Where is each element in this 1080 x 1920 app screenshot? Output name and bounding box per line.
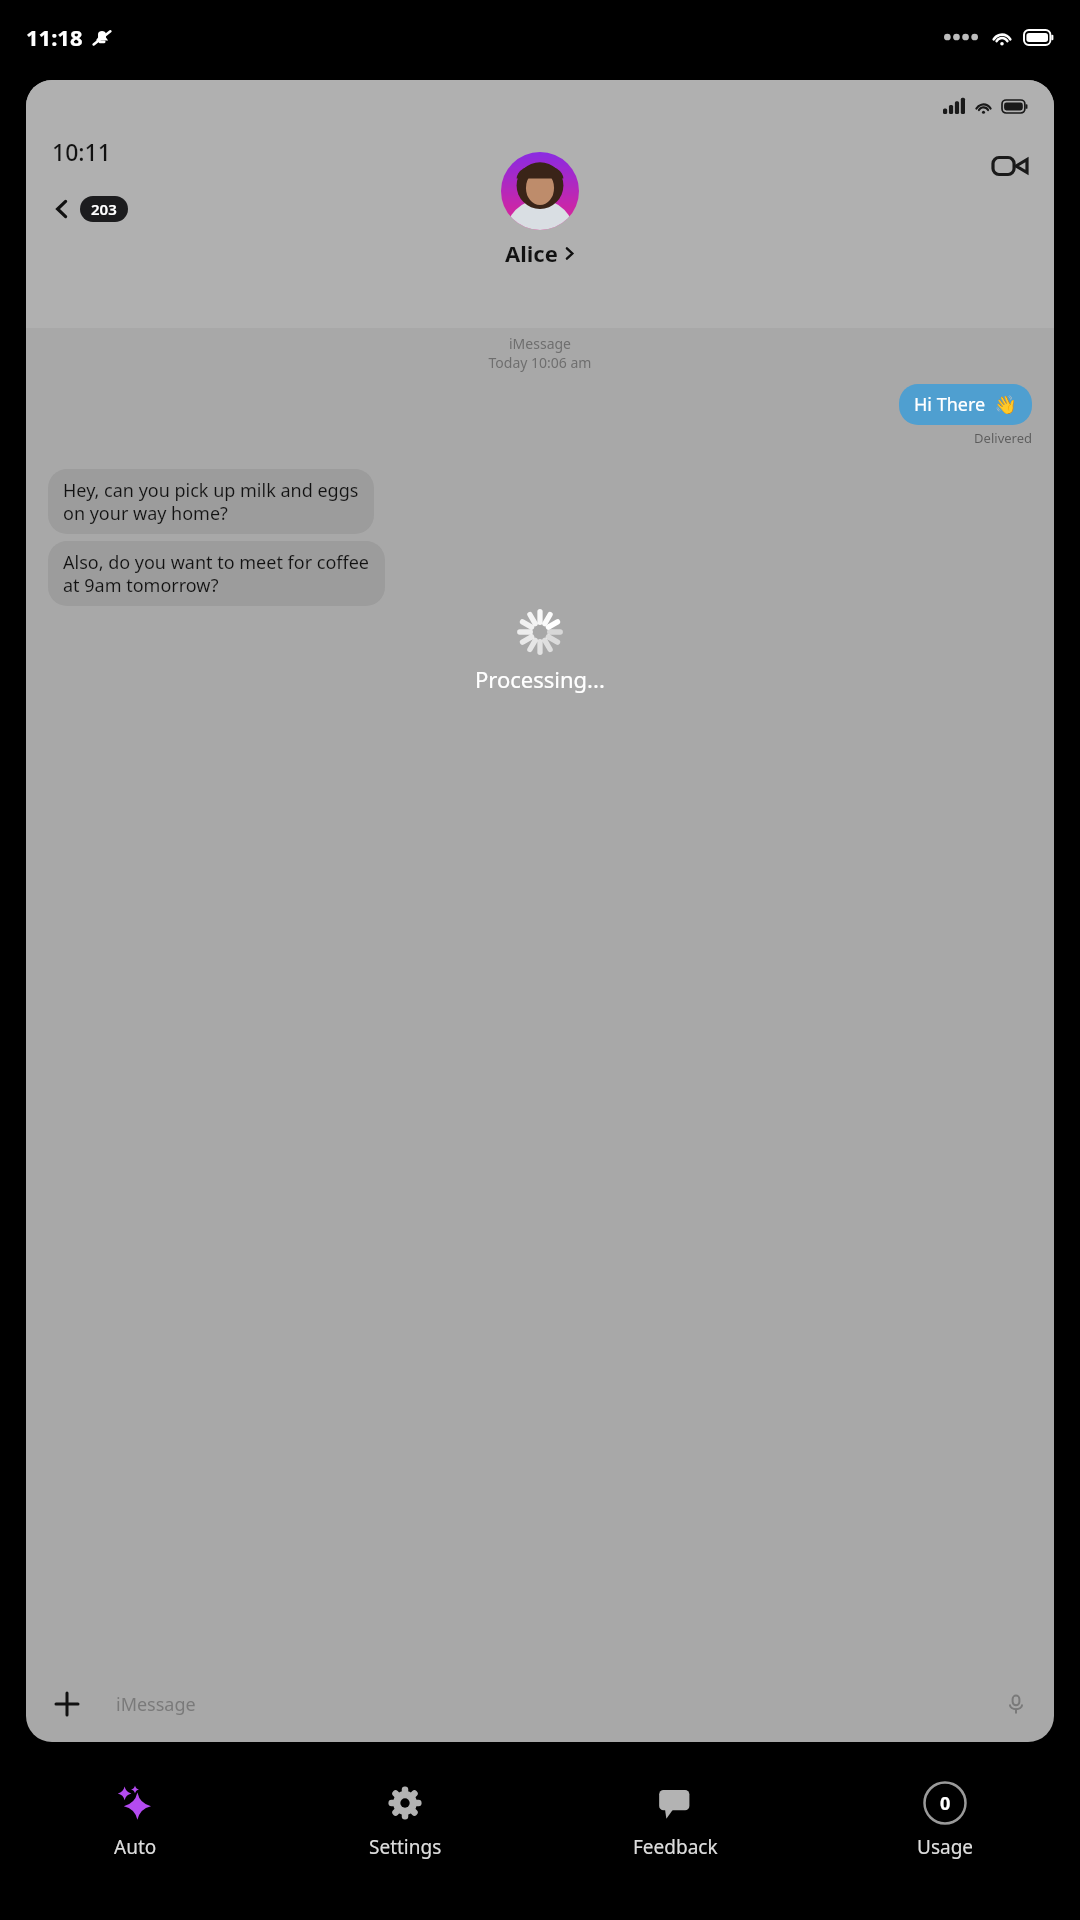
staticText: Processing... [475,664,605,694]
staticText: Hi There 👋 [914,392,1017,417]
button[interactable]: Auto [0,1760,270,1880]
staticText: Auto [114,1834,157,1860]
staticText: 0 [940,1791,951,1816]
staticText: 11:18 [26,22,83,52]
button[interactable]: Back, 203 unread [44,190,136,228]
staticText: Alice [505,238,558,268]
staticText: iMessage [116,1692,196,1717]
staticText: Today 10:06 am [48,353,1032,372]
staticText: Also, do you want to meet for coffee at … [63,550,370,597]
button[interactable]: Dictate [996,1684,1036,1724]
button[interactable]: Alice [501,152,579,268]
button[interactable]: Also, do you want to meet for coffee at … [48,541,385,606]
staticText: Feedback [633,1834,718,1860]
button[interactable]: iMessage [100,1681,996,1727]
staticText: 10:11 [52,136,111,167]
button[interactable]: Add attachment [44,1681,90,1727]
button[interactable]: Hi There 👋 [899,384,1032,425]
button[interactable]: Feedback [540,1760,810,1880]
button[interactable]: Settings [270,1760,540,1880]
staticText: Settings [369,1834,442,1860]
button[interactable]: 0 [810,1760,1080,1880]
staticText: Usage [917,1834,974,1860]
button[interactable]: Video call [984,140,1036,192]
staticText: Hey, can you pick up milk and eggs on yo… [63,478,359,525]
staticText: 203 [91,199,117,219]
staticText: Delivered [48,429,1032,447]
button[interactable]: Hey, can you pick up milk and eggs on yo… [48,469,374,534]
staticText: iMessage [48,334,1032,353]
